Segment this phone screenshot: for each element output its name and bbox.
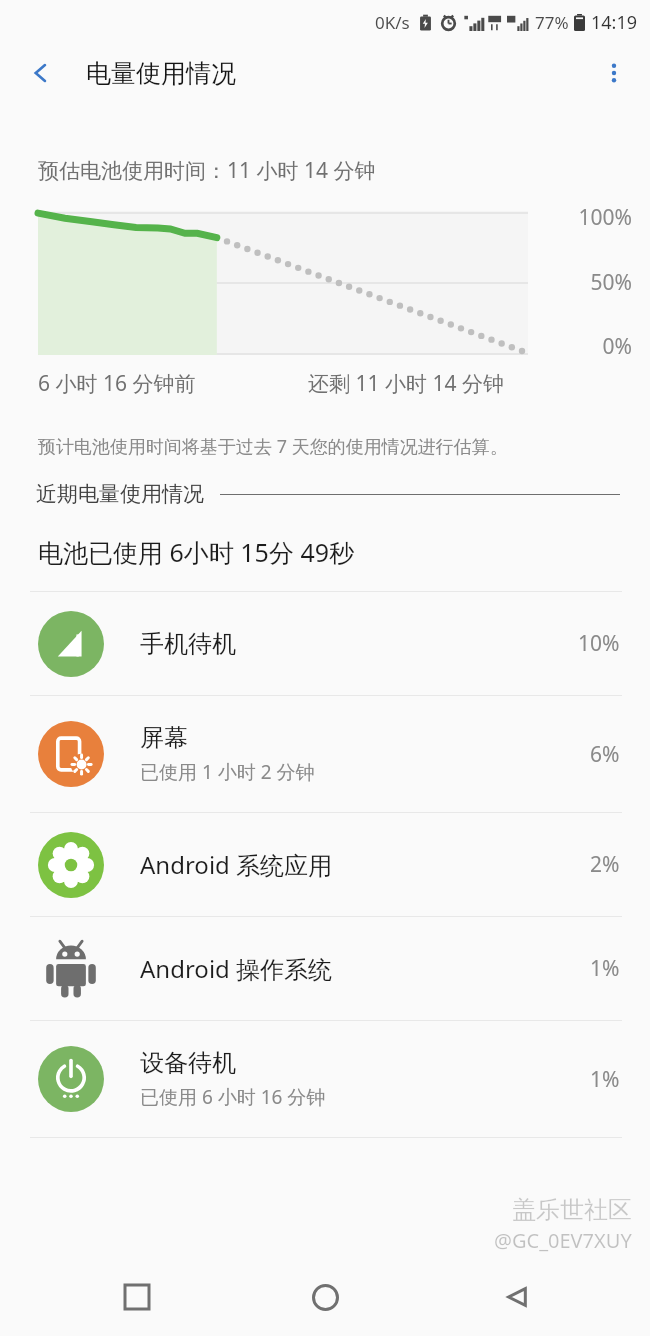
staticText: 盖乐世社区 <box>512 1195 632 1225</box>
staticText: 6 小时 16 分钟前 <box>38 369 196 398</box>
staticText: Android 系统应用 <box>140 848 333 881</box>
button[interactable]: 屏幕 <box>0 696 650 812</box>
staticText: 近期电量使用情况 <box>36 481 204 507</box>
staticText: 预估电池使用时间：11 小时 14 分钟 <box>38 156 376 185</box>
staticText: Android 操作系统 <box>140 952 333 985</box>
staticText: 0% <box>540 332 632 361</box>
button[interactable]: Back <box>18 50 64 96</box>
staticText: 77% <box>535 11 569 34</box>
staticText: 0K/s <box>375 11 410 34</box>
button[interactable]: Home <box>296 1268 354 1326</box>
staticText: 电量使用情况 <box>86 58 236 89</box>
button[interactable]: Android 操作系统 <box>0 917 650 1020</box>
button[interactable]: 设备待机 <box>0 1021 650 1137</box>
staticText: 100% <box>540 203 632 232</box>
staticText: 屏幕 <box>140 723 188 753</box>
button[interactable]: Recents <box>108 1268 166 1326</box>
staticText: 14:19 <box>591 10 638 35</box>
staticText: 10% <box>578 629 620 658</box>
staticText: 手机待机 <box>140 629 236 659</box>
staticText: 6% <box>590 740 620 769</box>
staticText: 设备待机 <box>140 1048 236 1078</box>
button[interactable]: Android 系统应用 <box>0 813 650 916</box>
staticText: 已使用 6 小时 16 分钟 <box>140 1084 326 1110</box>
staticText: @GC_0EV7XUY <box>494 1227 632 1254</box>
button[interactable]: More options <box>590 49 638 97</box>
staticText: 已使用 1 小时 2 分钟 <box>140 759 315 785</box>
staticText: 50% <box>540 268 632 297</box>
staticText: 1% <box>590 954 620 983</box>
button[interactable]: Back <box>488 1268 546 1326</box>
staticText: 2% <box>590 850 620 879</box>
staticText: 1% <box>590 1065 620 1094</box>
button[interactable]: 手机待机 <box>0 592 650 695</box>
staticText: 预计电池使用时间将基于过去 7 天您的使用情况进行估算。 <box>38 434 508 459</box>
staticText: 还剩 11 小时 14 分钟 <box>308 369 504 398</box>
staticText: 电池已使用 6小时 15分 49秒 <box>38 535 355 569</box>
